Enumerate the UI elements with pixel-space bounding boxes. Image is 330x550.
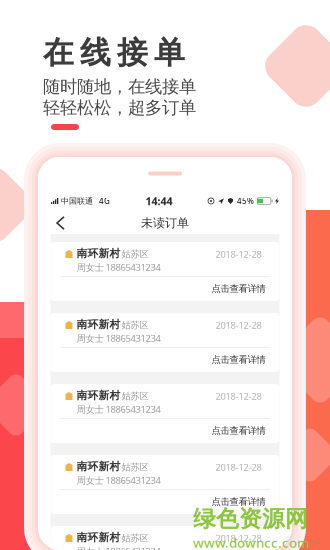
staticText: 在线接单	[43, 34, 185, 72]
staticText: 点击查看详情	[211, 354, 265, 365]
staticText: 2018-12-28	[215, 248, 261, 260]
staticText: 14:44	[145, 194, 172, 208]
staticText: 点击查看详情	[211, 283, 265, 294]
staticText: 南环新村	[76, 318, 120, 331]
staticText: 姑苏区	[121, 248, 148, 260]
staticText: 随时随地，在线接单	[43, 76, 196, 97]
staticText: 姑苏区	[121, 390, 148, 402]
staticText: 姑苏区	[121, 319, 148, 331]
staticText: 2018-12-28	[215, 390, 261, 402]
button[interactable]: 南环新村	[50, 313, 279, 372]
staticText: 2018-12-28	[215, 532, 261, 544]
staticText: 点击查看详情	[211, 496, 265, 507]
staticText: 轻轻松松，超多订单	[43, 97, 196, 118]
button[interactable]: 返回	[47, 210, 74, 236]
staticText: 未读订单	[141, 216, 189, 230]
staticText: 中国联通	[61, 196, 93, 206]
staticText: 点击查看详情	[211, 425, 265, 436]
button[interactable]: 南环新村	[50, 242, 279, 301]
staticText: 姑苏区	[121, 532, 148, 544]
button[interactable]: 南环新村	[50, 526, 279, 550]
staticText: 周女士 18865431234	[76, 403, 160, 415]
button[interactable]: 南环新村	[50, 455, 279, 514]
staticText: 南环新村	[76, 389, 120, 402]
staticText: 2018-12-28	[215, 319, 261, 331]
staticText: 南环新村	[76, 460, 120, 473]
button[interactable]: 南环新村	[50, 384, 279, 443]
staticText: 姑苏区	[121, 461, 148, 473]
staticText: 周女士 18865431234	[76, 545, 160, 550]
staticText: 周女士 18865431234	[76, 261, 160, 273]
staticText: 4G	[99, 196, 110, 206]
staticText: 45%	[237, 196, 254, 206]
staticText: 南环新村	[76, 531, 120, 544]
staticText: www.downcc.com	[193, 534, 310, 550]
staticText: 绿色资源网	[193, 505, 308, 533]
staticText: 2018-12-28	[215, 461, 261, 473]
staticText: 南环新村	[76, 247, 120, 260]
staticText: 周女士 18865431234	[76, 474, 160, 486]
staticText: 周女士 18865431234	[76, 332, 160, 344]
